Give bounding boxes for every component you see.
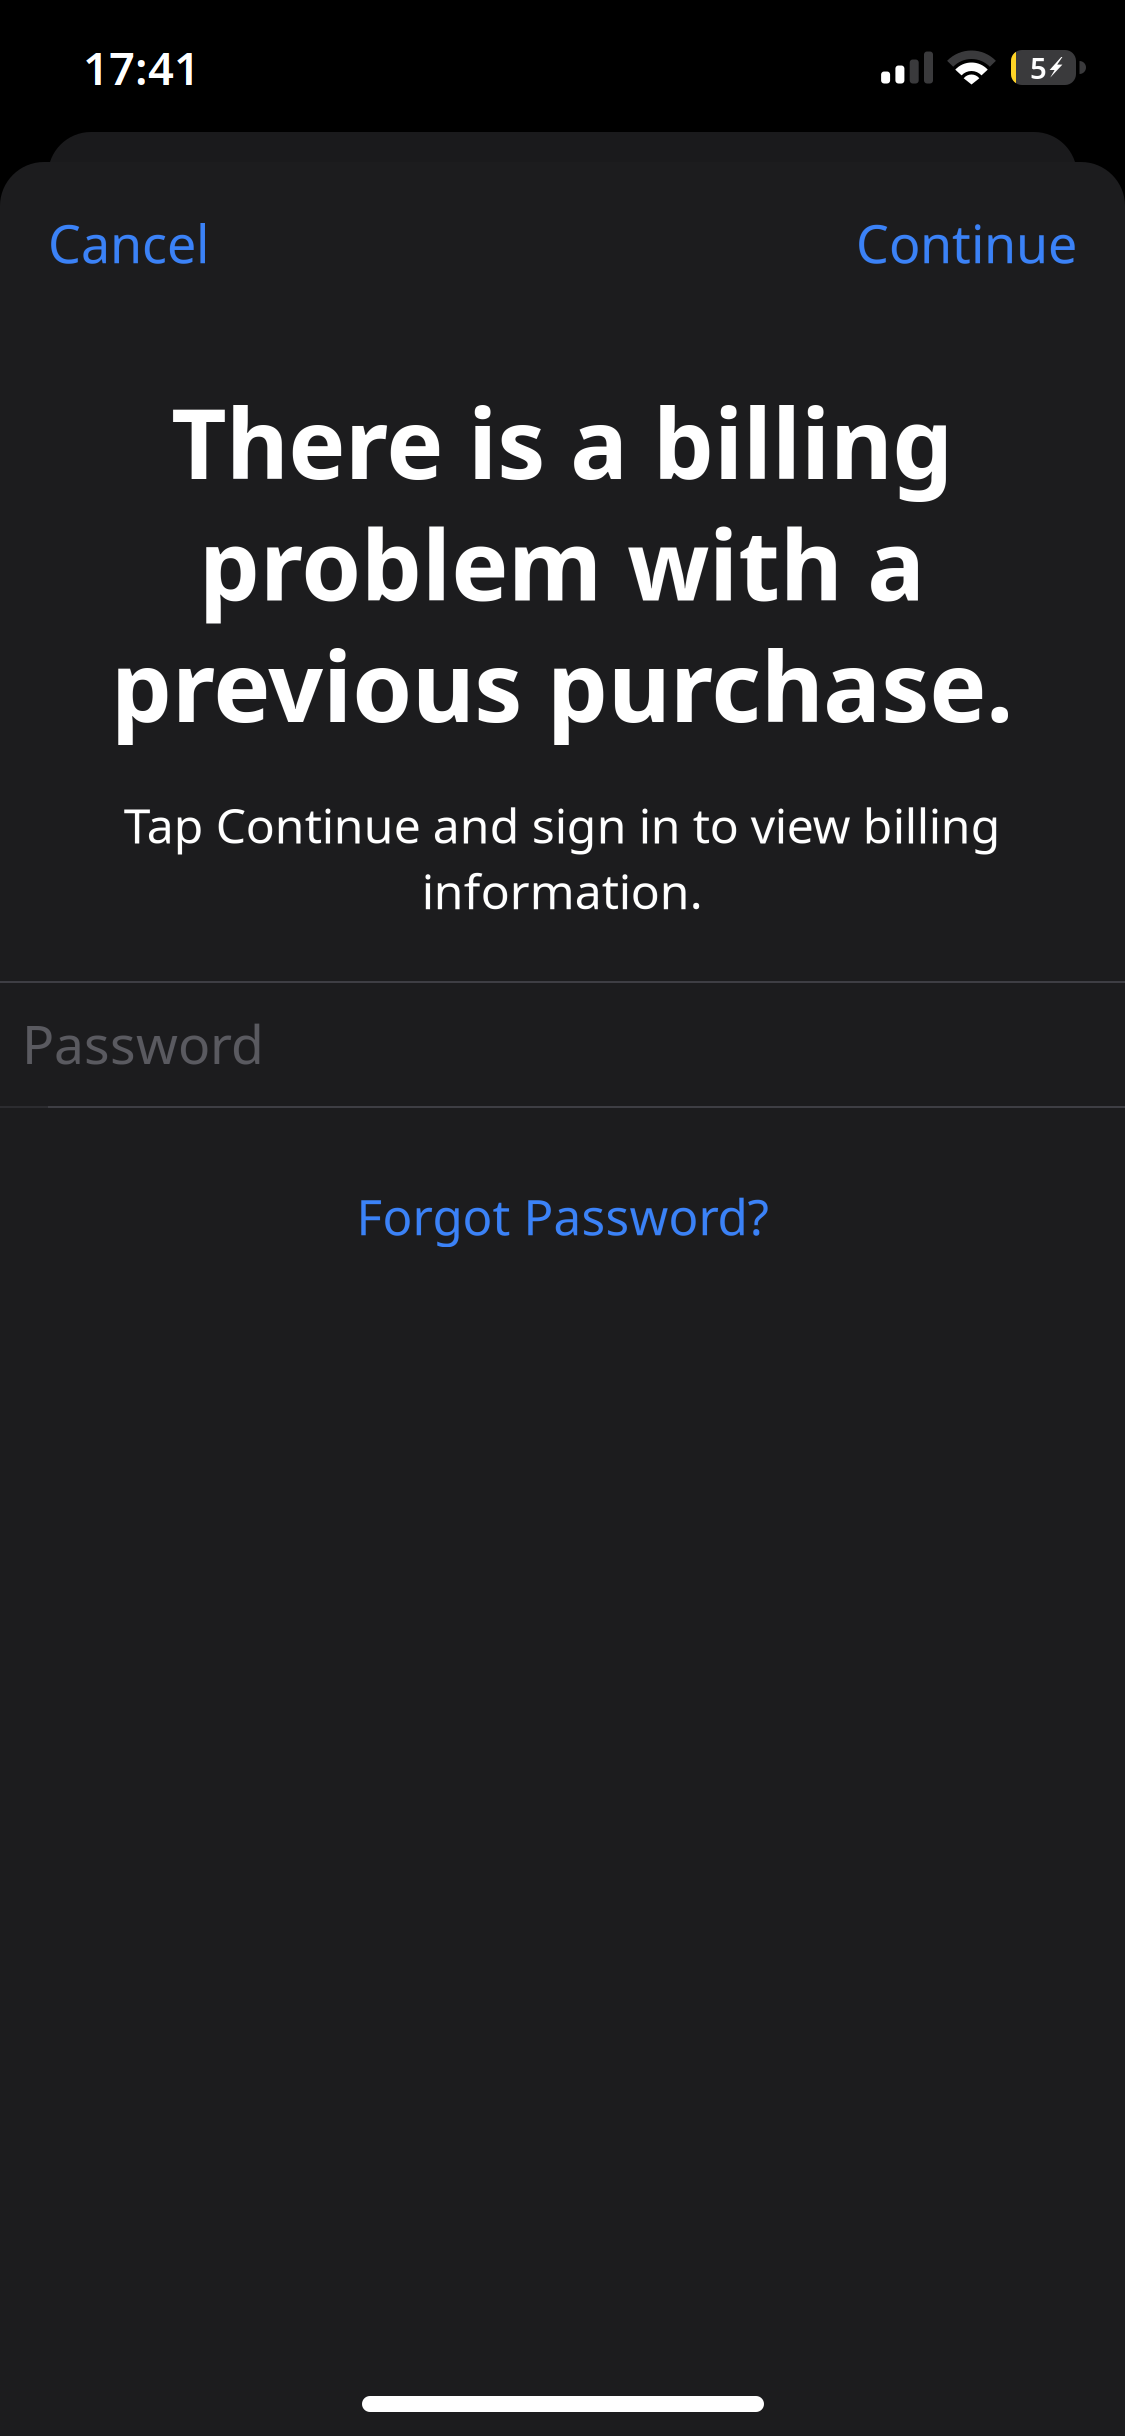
staticText: 17:41: [83, 37, 200, 98]
staticText: Cancel: [48, 208, 209, 278]
staticText: Password: [22, 1008, 264, 1079]
staticText: There is a billing problem with a previo…: [111, 378, 1013, 748]
button[interactable]: Forgot Password?: [0, 1156, 1125, 1276]
button[interactable]: Continue: [850, 197, 1083, 289]
staticText: Forgot Password?: [356, 1183, 768, 1249]
button[interactable]: Password: [0, 981, 1125, 1108]
staticText: 5: [1030, 48, 1047, 87]
staticText: Continue: [856, 208, 1077, 278]
staticText: Tap Continue and sign in to view billing…: [123, 793, 1000, 922]
button[interactable]: Cancel: [42, 197, 215, 289]
